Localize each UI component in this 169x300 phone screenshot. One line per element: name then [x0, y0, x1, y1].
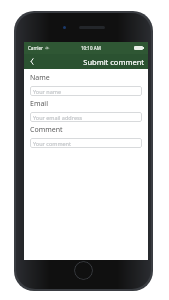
staticText: Email: [30, 99, 48, 109]
button[interactable]: Your name: [30, 86, 142, 96]
button[interactable]: Your comment: [30, 138, 142, 148]
staticText: Your email address: [33, 114, 83, 121]
staticText: 10:10 AM: [81, 45, 101, 51]
staticText: Carrier: [28, 45, 43, 51]
staticText: Name: [30, 73, 50, 83]
staticText: Your comment: [33, 140, 72, 147]
staticText: Submit comment: [83, 57, 144, 67]
button[interactable]: Home: [74, 261, 93, 280]
staticText: Comment: [30, 125, 63, 135]
button[interactable]: Your email address: [30, 112, 142, 122]
staticText: Your name: [33, 88, 61, 95]
button[interactable]: Back: [24, 54, 40, 69]
